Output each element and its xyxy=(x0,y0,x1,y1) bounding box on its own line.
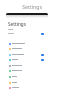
other: Toggle xyxy=(41,59,44,61)
button[interactable]: Network and internet xyxy=(6,41,48,47)
button[interactable]: Privacy xyxy=(6,80,48,86)
other: Toggle xyxy=(41,33,44,35)
button[interactable]: Connected devices xyxy=(6,46,48,52)
button[interactable]: Storage xyxy=(6,74,48,80)
button[interactable]: Location xyxy=(6,85,48,91)
button[interactable]: Display xyxy=(6,63,48,69)
button[interactable]: Apps and notifications xyxy=(6,52,48,58)
button[interactable]: Setting xyxy=(6,32,48,37)
other: Toggle xyxy=(41,54,44,56)
staticText: Settings xyxy=(8,21,26,27)
button[interactable]: Sound and vibration xyxy=(6,68,48,74)
button[interactable]: Battery xyxy=(6,57,48,63)
staticText: Settings xyxy=(22,3,42,10)
